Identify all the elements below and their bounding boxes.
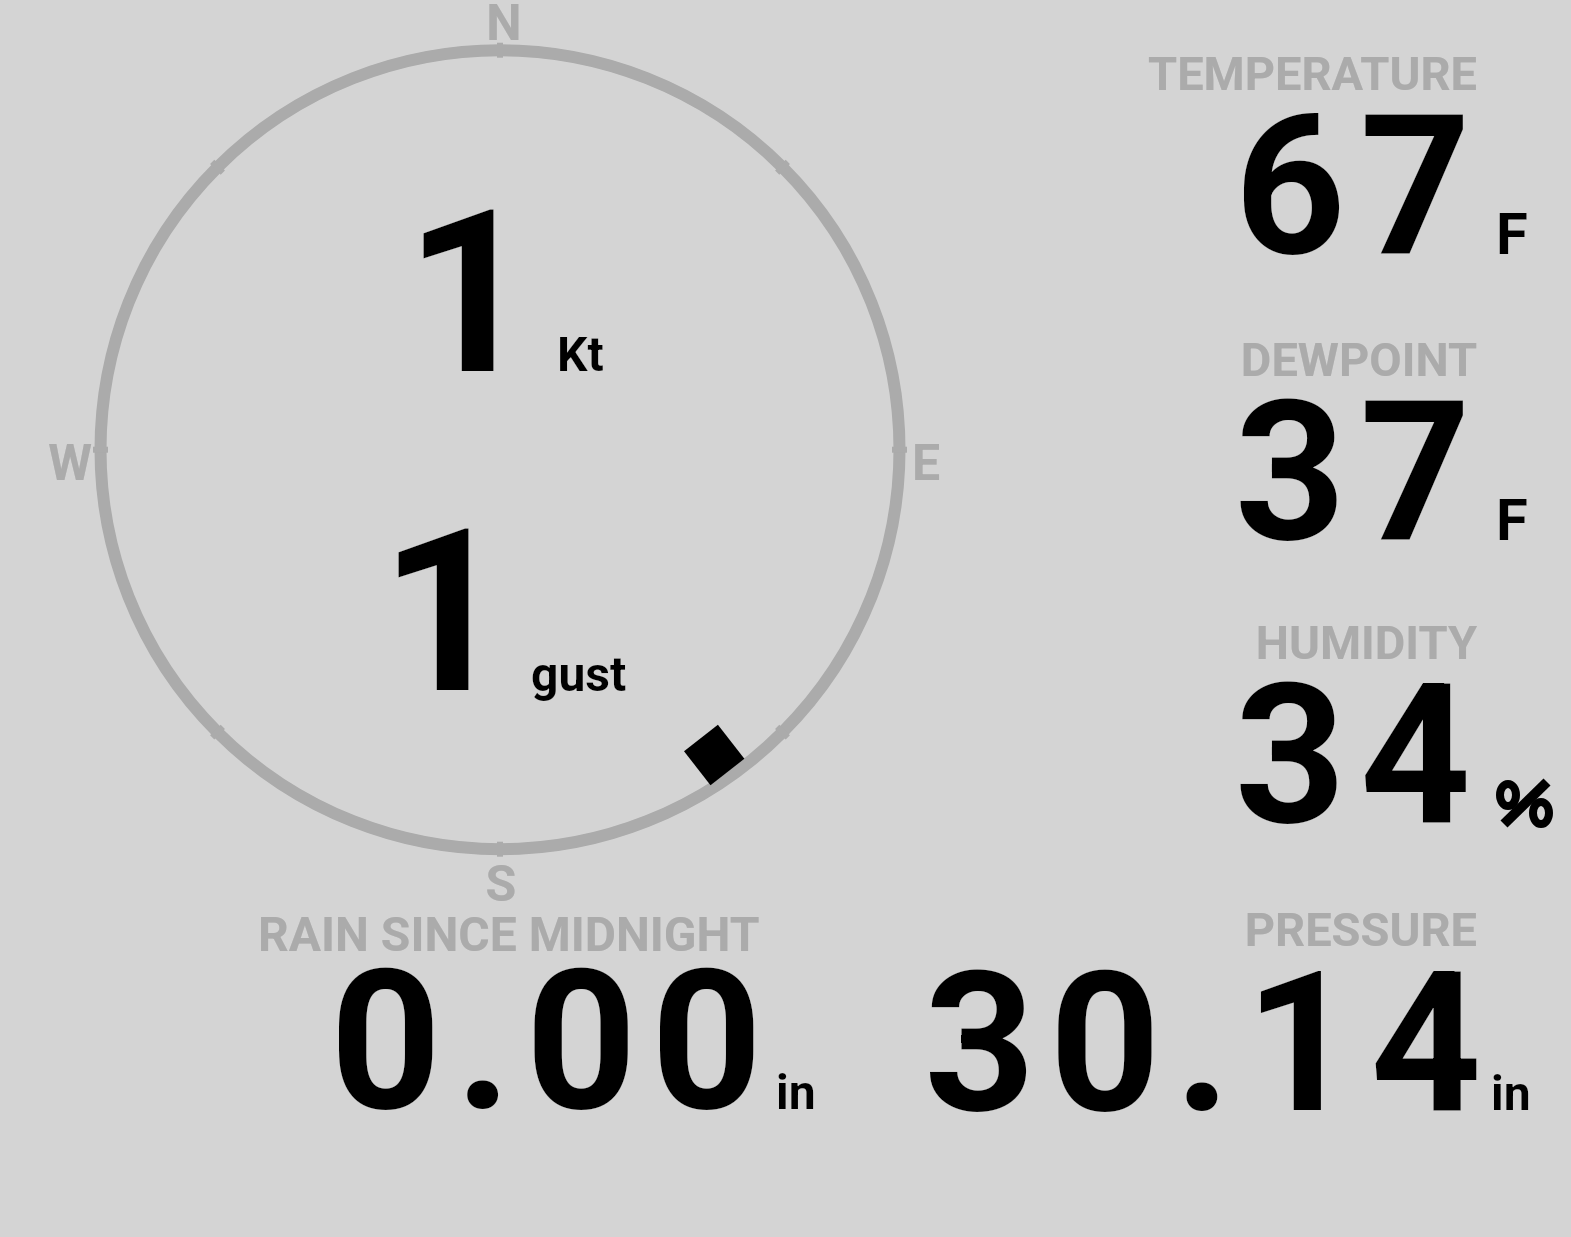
staticText: 67 bbox=[585, 73, 1485, 345]
staticText: 30.14 bbox=[924, 930, 1571, 1202]
staticText: 1 bbox=[380, 480, 1280, 796]
staticText: S bbox=[441, 855, 561, 925]
staticText: F bbox=[1496, 486, 1571, 567]
staticText: N bbox=[444, 0, 564, 64]
staticText: HUMIDITY bbox=[577, 615, 1477, 681]
staticText: 37 bbox=[585, 359, 1485, 631]
staticText: in bbox=[1491, 1065, 1571, 1132]
button[interactable]: Temperature 67 degrees Fahrenheit bbox=[1120, 40, 1560, 270]
staticText: Kt bbox=[557, 326, 1457, 393]
staticText: W bbox=[10, 434, 130, 504]
staticText: DEWPOINT bbox=[577, 332, 1477, 398]
staticText: gust bbox=[531, 646, 1431, 713]
button[interactable]: Humidity 34 percent bbox=[1120, 608, 1560, 838]
staticText: PRESSURE bbox=[577, 902, 1477, 968]
staticText: 34 bbox=[585, 642, 1485, 914]
staticText: TEMPERATURE bbox=[577, 46, 1477, 112]
button[interactable]: Dewpoint 37 degrees Fahrenheit bbox=[1120, 325, 1560, 555]
button[interactable]: Rain since midnight 0.00 inches bbox=[230, 900, 830, 1120]
staticText: 1 bbox=[405, 161, 1305, 477]
staticText: 0.00 bbox=[330, 928, 1230, 1200]
staticText: F bbox=[1496, 200, 1571, 281]
button[interactable]: Wind direction dial, 1 knot, gusting 1 bbox=[60, 10, 940, 890]
staticText: in bbox=[776, 1064, 1571, 1131]
staticText: RAIN SINCE MIDNIGHT bbox=[258, 906, 1158, 973]
button[interactable]: Pressure 30.14 inches bbox=[900, 895, 1550, 1120]
staticText: E bbox=[866, 434, 986, 504]
